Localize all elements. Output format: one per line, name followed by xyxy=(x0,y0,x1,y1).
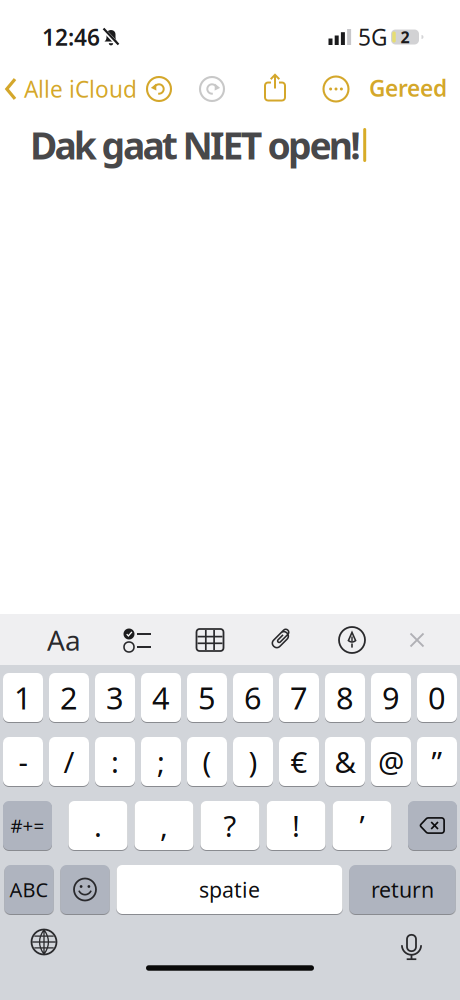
button[interactable]: 8 xyxy=(325,673,365,722)
button[interactable]: ABC xyxy=(4,865,53,914)
button[interactable]: ’ xyxy=(332,801,391,850)
staticText: Gereed xyxy=(369,73,447,103)
staticText: 6 xyxy=(244,677,262,718)
staticText: 3 xyxy=(106,677,124,718)
button[interactable]: return xyxy=(349,865,455,914)
staticText: 1 xyxy=(14,677,32,718)
button[interactable]: ; xyxy=(141,737,181,786)
button[interactable]: Redo xyxy=(200,77,224,101)
staticText: ) xyxy=(248,742,257,781)
button[interactable]: & xyxy=(325,737,365,786)
staticText: spatie xyxy=(199,875,260,904)
button[interactable]: Gereed xyxy=(369,73,447,103)
button[interactable]: 2 xyxy=(49,673,89,722)
button[interactable]: 6 xyxy=(233,673,273,722)
button[interactable]: Share xyxy=(263,74,286,102)
staticText: Aa xyxy=(47,621,81,659)
staticText: : xyxy=(111,742,119,781)
staticText: ; xyxy=(157,742,165,781)
button[interactable]: Delete xyxy=(408,801,457,850)
button[interactable]: Format xyxy=(47,621,81,659)
staticText: ? xyxy=(223,806,236,845)
button[interactable]: Table xyxy=(196,629,223,651)
button[interactable]: Dictate xyxy=(397,931,425,963)
button[interactable]: ! xyxy=(266,801,325,850)
staticText: 2 xyxy=(400,26,409,48)
button[interactable]: - xyxy=(3,737,43,786)
staticText: 2 xyxy=(60,677,78,718)
staticText: 0 xyxy=(428,677,446,718)
staticText: Dak gaat NIET open! xyxy=(30,120,361,170)
button[interactable]: : xyxy=(95,737,135,786)
button[interactable]: 1 xyxy=(3,673,43,722)
button[interactable]: @ xyxy=(371,737,411,786)
staticText: ’ xyxy=(359,806,364,845)
staticText: Alle iCloud xyxy=(24,74,137,104)
staticText: 5G xyxy=(358,22,388,52)
button[interactable]: ? xyxy=(200,801,259,850)
staticText: / xyxy=(63,742,74,781)
staticText: #+= xyxy=(10,813,44,838)
button[interactable]: Markup xyxy=(339,627,365,653)
staticText: - xyxy=(18,742,27,781)
staticText: ( xyxy=(202,742,211,781)
staticText: 8 xyxy=(336,677,354,718)
staticText: @ xyxy=(378,742,404,781)
button[interactable]: / xyxy=(49,737,89,786)
button[interactable]: #+= xyxy=(3,801,52,850)
staticText: 7 xyxy=(290,677,308,718)
button[interactable]: 5 xyxy=(187,673,227,722)
staticText: 5 xyxy=(198,677,216,718)
button[interactable]: 7 xyxy=(279,673,319,722)
staticText: , xyxy=(160,806,168,845)
button[interactable]: Attach xyxy=(267,628,293,652)
button[interactable]: , xyxy=(134,801,193,850)
button[interactable]: ” xyxy=(417,737,457,786)
staticText: 4 xyxy=(152,677,170,718)
staticText: € xyxy=(290,742,307,781)
button[interactable]: Dismiss keyboard xyxy=(409,632,424,647)
button[interactable]: Undo xyxy=(147,77,171,101)
staticText: & xyxy=(334,742,355,781)
button[interactable]: spatie xyxy=(116,865,342,914)
button[interactable]: 4 xyxy=(141,673,181,722)
staticText: ABC xyxy=(9,876,48,903)
staticText: return xyxy=(371,875,434,904)
button[interactable]: Next keyboard xyxy=(31,929,56,954)
button[interactable]: 9 xyxy=(371,673,411,722)
button[interactable]: Alle iCloud xyxy=(5,74,137,104)
staticText: ! xyxy=(292,806,300,845)
staticText: 12:46 xyxy=(42,22,100,52)
button[interactable]: € xyxy=(279,737,319,786)
staticText: 9 xyxy=(382,677,400,718)
button[interactable]: 0 xyxy=(417,673,457,722)
button[interactable]: Emoji xyxy=(60,865,109,914)
button[interactable]: . xyxy=(68,801,127,850)
button[interactable]: 3 xyxy=(95,673,135,722)
staticText: ” xyxy=(431,742,442,781)
button[interactable]: More xyxy=(323,76,348,101)
button[interactable]: ) xyxy=(233,737,273,786)
staticText: . xyxy=(94,806,102,845)
button[interactable]: ( xyxy=(187,737,227,786)
button[interactable]: Checklist xyxy=(122,627,152,653)
